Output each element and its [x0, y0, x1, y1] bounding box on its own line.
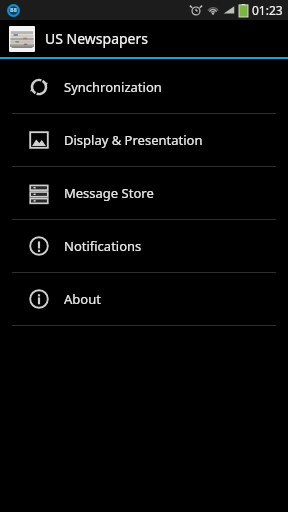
- button[interactable]: Message Store: [0, 167, 288, 219]
- button[interactable]: Display & Presentation: [0, 114, 288, 166]
- staticText: US Newspapers: [45, 29, 148, 48]
- staticText: 88: [7, 6, 20, 14]
- staticText: 01:23: [252, 2, 283, 18]
- button[interactable]: Notifications: [0, 220, 288, 272]
- staticText: Display & Presentation: [64, 131, 203, 149]
- staticText: Notifications: [64, 237, 142, 255]
- staticText: About: [64, 290, 101, 308]
- button[interactable]: Synchronization: [0, 61, 288, 113]
- button[interactable]: About: [0, 273, 288, 325]
- staticText: Message Store: [64, 184, 154, 202]
- staticText: Synchronization: [64, 78, 162, 96]
- button[interactable]: US Newspapers: [0, 20, 288, 57]
